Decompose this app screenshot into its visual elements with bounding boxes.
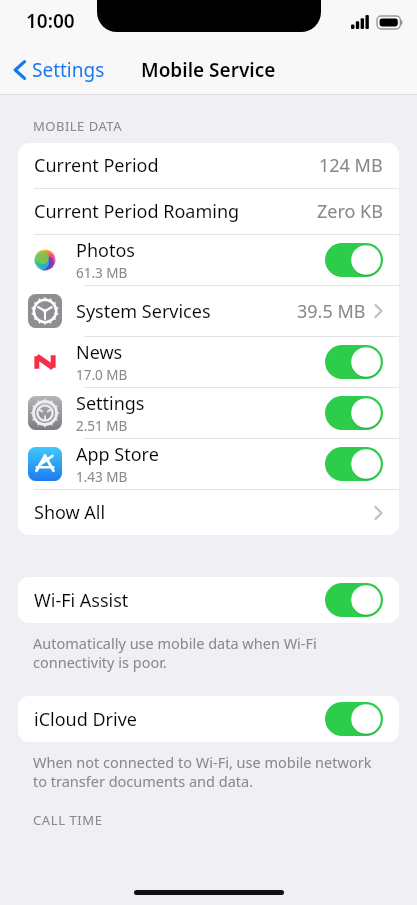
- staticText: App Store: [76, 442, 159, 467]
- button[interactable]: Toggle: [325, 583, 383, 617]
- staticText: Current Period Roaming: [34, 199, 317, 224]
- staticText: Settings: [32, 57, 105, 83]
- staticText: When not connected to Wi-Fi, use mobile …: [33, 752, 372, 791]
- staticText: iCloud Drive: [34, 707, 325, 732]
- button[interactable]: Photos: [18, 235, 399, 285]
- staticText: System Services: [76, 299, 211, 324]
- staticText: 10:00: [26, 8, 75, 34]
- button[interactable]: App Store: [18, 439, 399, 489]
- staticText: Photos: [76, 238, 135, 263]
- button[interactable]: Toggle: [325, 345, 383, 379]
- button[interactable]: Toggle: [325, 447, 383, 481]
- button[interactable]: Settings: [8, 53, 111, 87]
- staticText: Current Period: [34, 153, 319, 178]
- staticText: Wi-Fi Assist: [34, 588, 325, 613]
- button[interactable]: Wi-Fi Assist: [18, 577, 399, 623]
- button[interactable]: Toggle: [325, 396, 383, 430]
- staticText: 17.0 MB: [76, 366, 128, 384]
- staticText: Mobile Service: [141, 57, 276, 83]
- button[interactable]: Current Period: [18, 143, 399, 188]
- staticText: Zero KB: [317, 199, 383, 224]
- staticText: Automatically use mobile data when Wi-Fi…: [33, 633, 317, 672]
- button[interactable]: System Services: [18, 286, 399, 336]
- button[interactable]: Show All: [18, 490, 399, 535]
- button[interactable]: Toggle: [325, 243, 383, 277]
- button[interactable]: News: [18, 337, 399, 387]
- staticText: 2.51 MB: [76, 417, 128, 435]
- button[interactable]: iCloud Drive: [18, 696, 399, 742]
- staticText: Settings: [76, 391, 145, 416]
- staticText: Show All: [34, 500, 374, 525]
- button[interactable]: Current Period Roaming: [18, 189, 399, 234]
- button[interactable]: Toggle: [325, 702, 383, 736]
- staticText: 39.5 MB: [297, 299, 366, 324]
- staticText: 61.3 MB: [76, 264, 128, 282]
- button[interactable]: Settings: [18, 388, 399, 438]
- staticText: CALL TIME: [33, 811, 103, 829]
- staticText: MOBILE DATA: [33, 117, 122, 135]
- staticText: 124 MB: [319, 153, 383, 178]
- staticText: 1.43 MB: [76, 468, 128, 486]
- staticText: News: [76, 340, 123, 365]
